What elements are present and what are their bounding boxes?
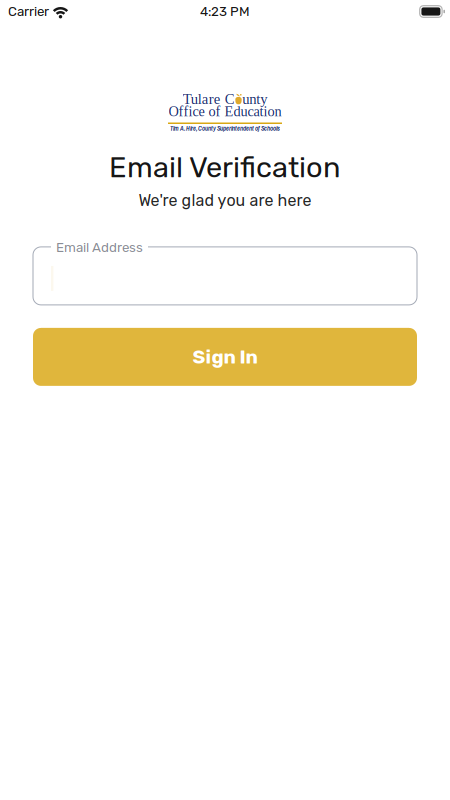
button[interactable]: Sign In (33, 328, 417, 386)
staticText: Email Address (56, 239, 143, 255)
staticText: Carrier (8, 4, 49, 19)
staticText: Sign In (192, 345, 257, 368)
staticText: unty (242, 91, 267, 107)
staticText: Office of Education (168, 104, 281, 119)
staticText: Tim A. Hire, County Superintendent of Sc… (170, 124, 280, 133)
button[interactable]: Email Address (33, 247, 417, 305)
staticText: 4:23 PM (200, 4, 250, 19)
staticText: We're glad you are here (138, 191, 311, 210)
staticText: Email Verification (109, 150, 341, 185)
staticText: Tulare C (183, 91, 235, 107)
